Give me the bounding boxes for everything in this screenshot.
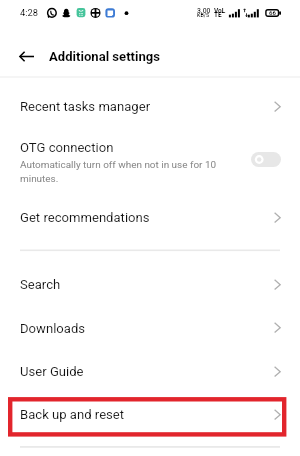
staticText: Get recommendations (20, 210, 150, 225)
staticText: Recent tasks manager (20, 99, 151, 114)
button[interactable] (0, 190, 300, 234)
button[interactable] (0, 131, 300, 191)
staticText: 4:28 (20, 7, 38, 18)
staticText: Additional settings (49, 49, 161, 64)
staticText: Search (20, 277, 61, 292)
staticText: Downloads (20, 321, 86, 336)
staticText: VoL (214, 7, 226, 15)
staticText: OTG connection (20, 140, 114, 155)
button[interactable] (0, 257, 300, 301)
staticText: KB/S (197, 12, 210, 18)
staticText: Back up and reset (20, 407, 125, 422)
staticText: User Guide (20, 364, 84, 379)
button[interactable] (0, 300, 300, 344)
button[interactable]: Back (10, 40, 42, 72)
staticText: Automatically turn off when not in use f… (20, 159, 220, 185)
staticText: 3.00 (197, 7, 211, 15)
button[interactable] (0, 344, 300, 388)
button[interactable] (0, 387, 300, 431)
staticText: 66 (269, 9, 276, 16)
staticText: TE (214, 11, 222, 19)
button[interactable] (0, 79, 300, 123)
button[interactable]: OTG connection switch (251, 152, 281, 167)
